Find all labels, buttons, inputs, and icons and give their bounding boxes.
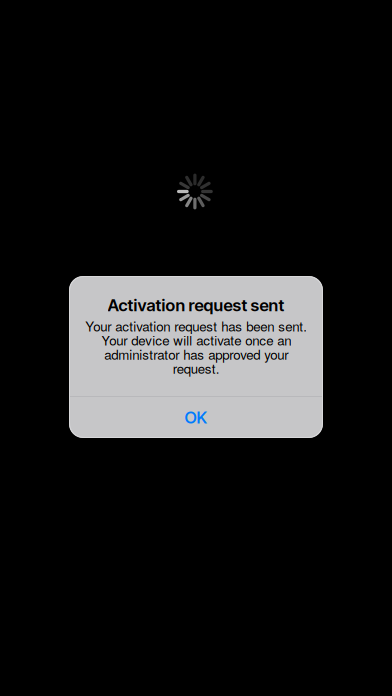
- staticText: Activation request sent: [107, 295, 284, 315]
- staticText: Your activation request has been sent. Y…: [85, 316, 307, 377]
- staticText: OK: [184, 407, 207, 428]
- button[interactable]: OK: [69, 397, 323, 438]
